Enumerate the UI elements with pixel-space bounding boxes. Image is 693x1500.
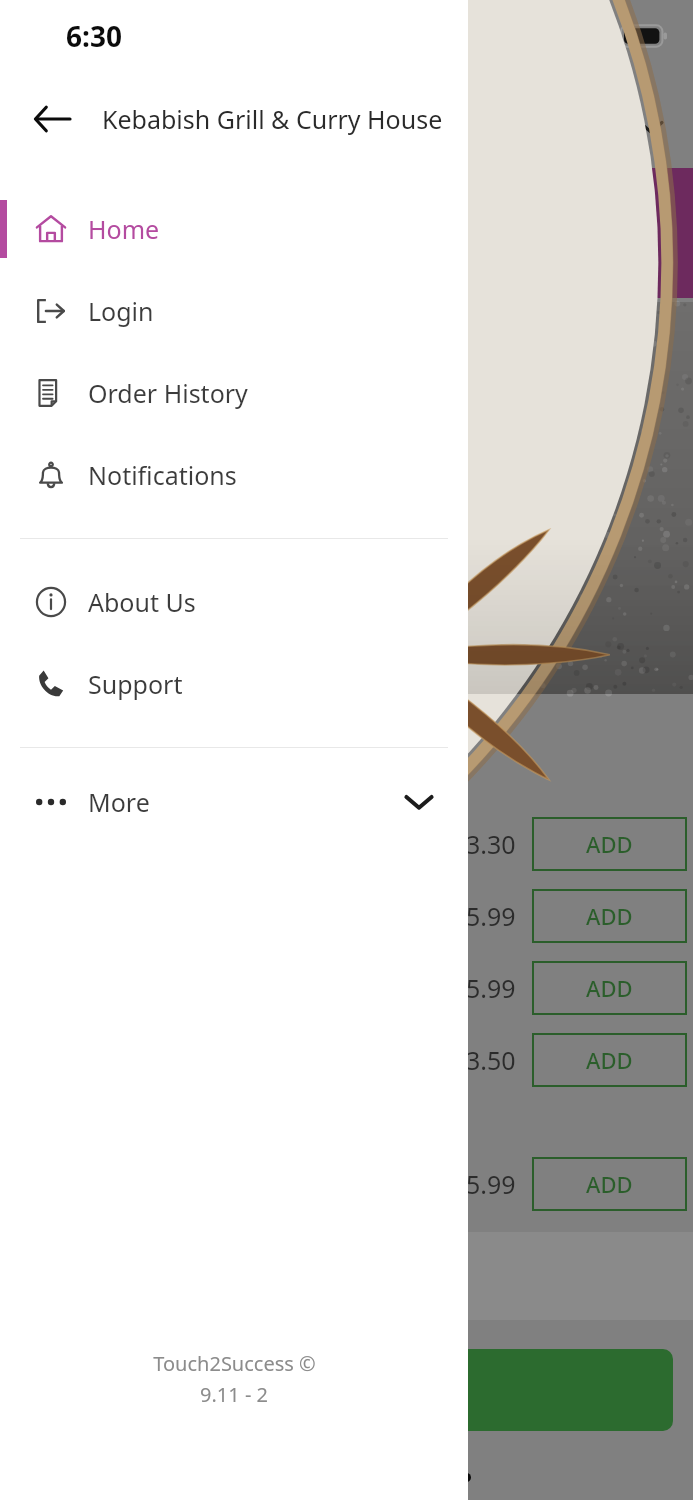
staticText: ADD	[586, 1169, 633, 1199]
button[interactable]: ADD	[532, 1157, 687, 1211]
staticText: Home	[88, 212, 160, 246]
staticText: 5.99	[466, 899, 516, 933]
button[interactable]: ADD	[532, 817, 687, 871]
button[interactable]: About Us	[0, 561, 468, 643]
staticText: 6:30	[66, 17, 122, 55]
staticText: Touch2Success ©	[153, 1350, 316, 1377]
staticText: order now for	[6, 236, 177, 270]
staticText: ADD	[586, 973, 633, 1003]
staticText: 3.50	[466, 1043, 516, 1077]
button[interactable]: Order History	[0, 352, 468, 434]
button[interactable]: Back	[24, 91, 80, 147]
button[interactable]: More	[0, 766, 468, 838]
button[interactable]: Home	[0, 188, 468, 270]
staticText: Order History	[88, 376, 248, 410]
staticText: 9.11 - 2	[200, 1381, 268, 1408]
button[interactable]: Expand	[627, 103, 675, 151]
staticText: ADD	[586, 1045, 633, 1075]
staticText: Kebabish Grill & Curry House	[102, 102, 443, 136]
button[interactable]: ADD	[532, 1033, 687, 1087]
staticText: More	[88, 785, 150, 819]
button[interactable]: ADD	[532, 961, 687, 1015]
staticText: 5.99	[466, 971, 516, 1005]
button[interactable]: Login	[0, 270, 468, 352]
staticText: Login	[88, 294, 154, 328]
staticText: 5.99	[466, 1167, 516, 1201]
button[interactable]: ADD	[532, 889, 687, 943]
staticText: 3.30	[466, 827, 516, 861]
staticText: ed and will open	[6, 196, 210, 230]
staticText: About Us	[88, 585, 196, 619]
staticText: Notifications	[88, 458, 237, 492]
staticText: ADD	[586, 829, 633, 859]
staticText: Support	[88, 667, 183, 701]
button[interactable]: Notifications	[0, 434, 468, 516]
button[interactable]	[0, 1349, 673, 1431]
staticText: ADD	[586, 901, 633, 931]
button[interactable]: Support	[0, 643, 468, 725]
